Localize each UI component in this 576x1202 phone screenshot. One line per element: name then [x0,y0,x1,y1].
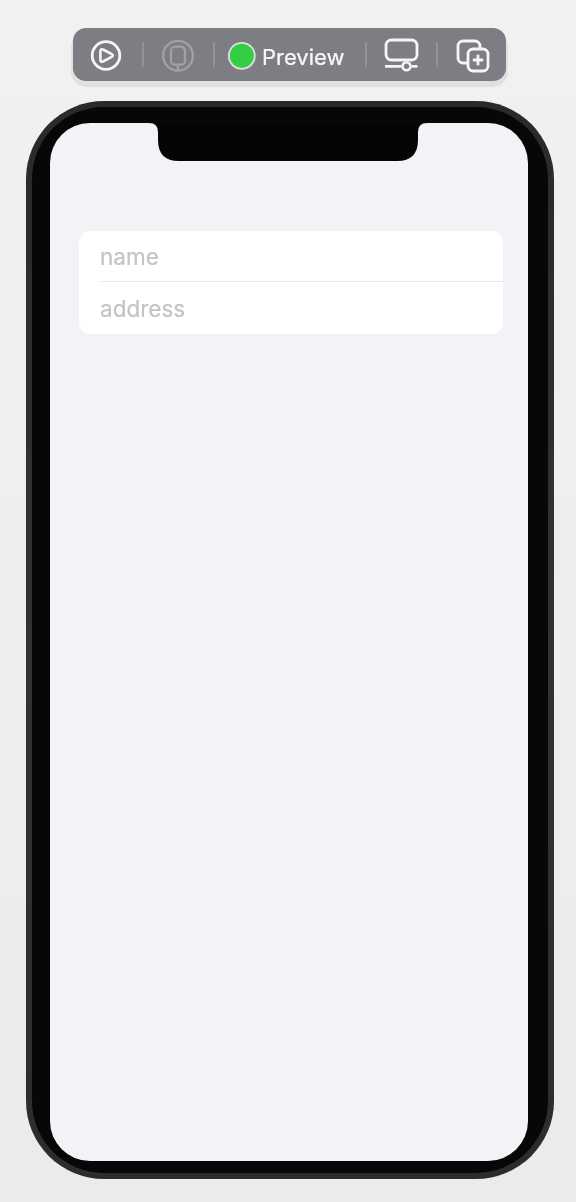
button[interactable]: address [79,282,503,334]
button[interactable] [437,28,506,81]
button[interactable]: name [79,231,503,281]
staticText: name [100,243,159,270]
button[interactable] [366,28,437,81]
button[interactable] [73,28,143,81]
button[interactable] [143,28,214,81]
staticText: address [100,295,186,322]
staticText: Preview [262,44,345,71]
button[interactable] [214,28,366,81]
